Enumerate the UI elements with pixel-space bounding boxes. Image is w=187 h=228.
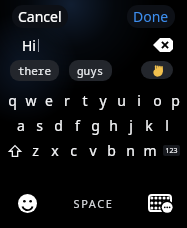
button[interactable]: y (94, 88, 112, 113)
button[interactable]: i (130, 88, 148, 113)
button[interactable]: e (40, 88, 58, 113)
button[interactable]: x (45, 138, 64, 163)
staticText: r (64, 91, 70, 110)
button[interactable]: SPACE (44, 178, 143, 228)
staticText: there (18, 63, 51, 78)
staticText: n (126, 141, 135, 160)
staticText: q (8, 91, 17, 110)
staticText: Done (133, 7, 169, 26)
button[interactable]: Backspace (151, 36, 175, 54)
staticText: Hi (22, 36, 36, 55)
staticText: b (107, 141, 116, 160)
button[interactable]: k (140, 113, 158, 138)
button[interactable]: p (166, 88, 184, 113)
staticText: h (109, 116, 118, 135)
button[interactable]: g (86, 113, 104, 138)
button[interactable]: v (83, 138, 102, 163)
button[interactable]: Emoji (10, 186, 44, 220)
staticText: k (145, 116, 153, 135)
button[interactable]: m (140, 138, 159, 163)
button[interactable]: Done (127, 5, 175, 28)
staticText: i (137, 91, 141, 110)
staticText: z (32, 141, 39, 160)
staticText: w (25, 91, 37, 110)
button[interactable]: a (11, 113, 30, 138)
staticText: o (153, 91, 162, 110)
button[interactable]: b (102, 138, 121, 163)
button[interactable]: guys (69, 60, 112, 81)
button[interactable]: Numbers and symbols (159, 138, 183, 163)
staticText: y (99, 91, 107, 110)
staticText: 123 (165, 146, 178, 156)
staticText: d (54, 116, 63, 135)
button[interactable]: f (68, 113, 86, 138)
staticText: f (75, 116, 80, 135)
button[interactable]: l (158, 113, 176, 138)
button[interactable]: Cancel (12, 5, 68, 28)
button[interactable]: Switch keyboard (143, 186, 177, 220)
staticText: s (36, 116, 43, 135)
button[interactable]: n (121, 138, 140, 163)
button[interactable]: j (122, 113, 140, 138)
button[interactable]: r (58, 88, 76, 113)
staticText: p (171, 91, 180, 110)
staticText: t (82, 91, 88, 110)
staticText: l (165, 116, 169, 135)
staticText: u (117, 91, 126, 110)
staticText: guys (77, 63, 104, 78)
button[interactable]: q (3, 88, 22, 113)
staticText: c (70, 141, 77, 160)
staticText: g (91, 116, 100, 135)
staticText: j (129, 116, 133, 135)
button[interactable]: c (64, 138, 83, 163)
button[interactable]: s (30, 113, 49, 138)
staticText: SPACE (73, 196, 114, 211)
button[interactable]: h (104, 113, 122, 138)
button[interactable]: t (76, 88, 94, 113)
staticText: a (17, 116, 25, 135)
staticText: x (51, 141, 59, 160)
staticText: m (143, 141, 157, 160)
button[interactable]: there (10, 60, 59, 81)
staticText: Cancel (18, 7, 62, 26)
staticText: e (45, 91, 53, 110)
button[interactable]: w (22, 88, 40, 113)
button[interactable]: o (148, 88, 166, 113)
button[interactable]: u (112, 88, 130, 113)
button[interactable]: Waving hand emoji (141, 61, 173, 79)
button[interactable]: z (26, 138, 45, 163)
button[interactable]: d (49, 113, 68, 138)
button[interactable]: Shift (4, 138, 26, 163)
staticText: v (89, 141, 97, 160)
